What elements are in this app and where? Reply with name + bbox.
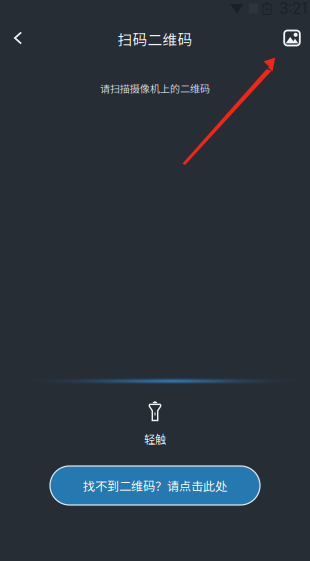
staticText: 3:21 (279, 0, 307, 18)
staticText: 轻触 (144, 431, 166, 447)
staticText: 扫码二维码 (117, 28, 192, 49)
staticText: 请扫描摄像机上的二维码 (100, 81, 210, 95)
button[interactable]: Back (1, 21, 35, 55)
button[interactable]: 轻触 (123, 400, 187, 447)
button[interactable]: 找不到二维码？请点击此处 (50, 466, 260, 505)
staticText: 找不到二维码？请点击此处 (83, 477, 227, 494)
button[interactable]: Choose photo from album (275, 21, 309, 55)
